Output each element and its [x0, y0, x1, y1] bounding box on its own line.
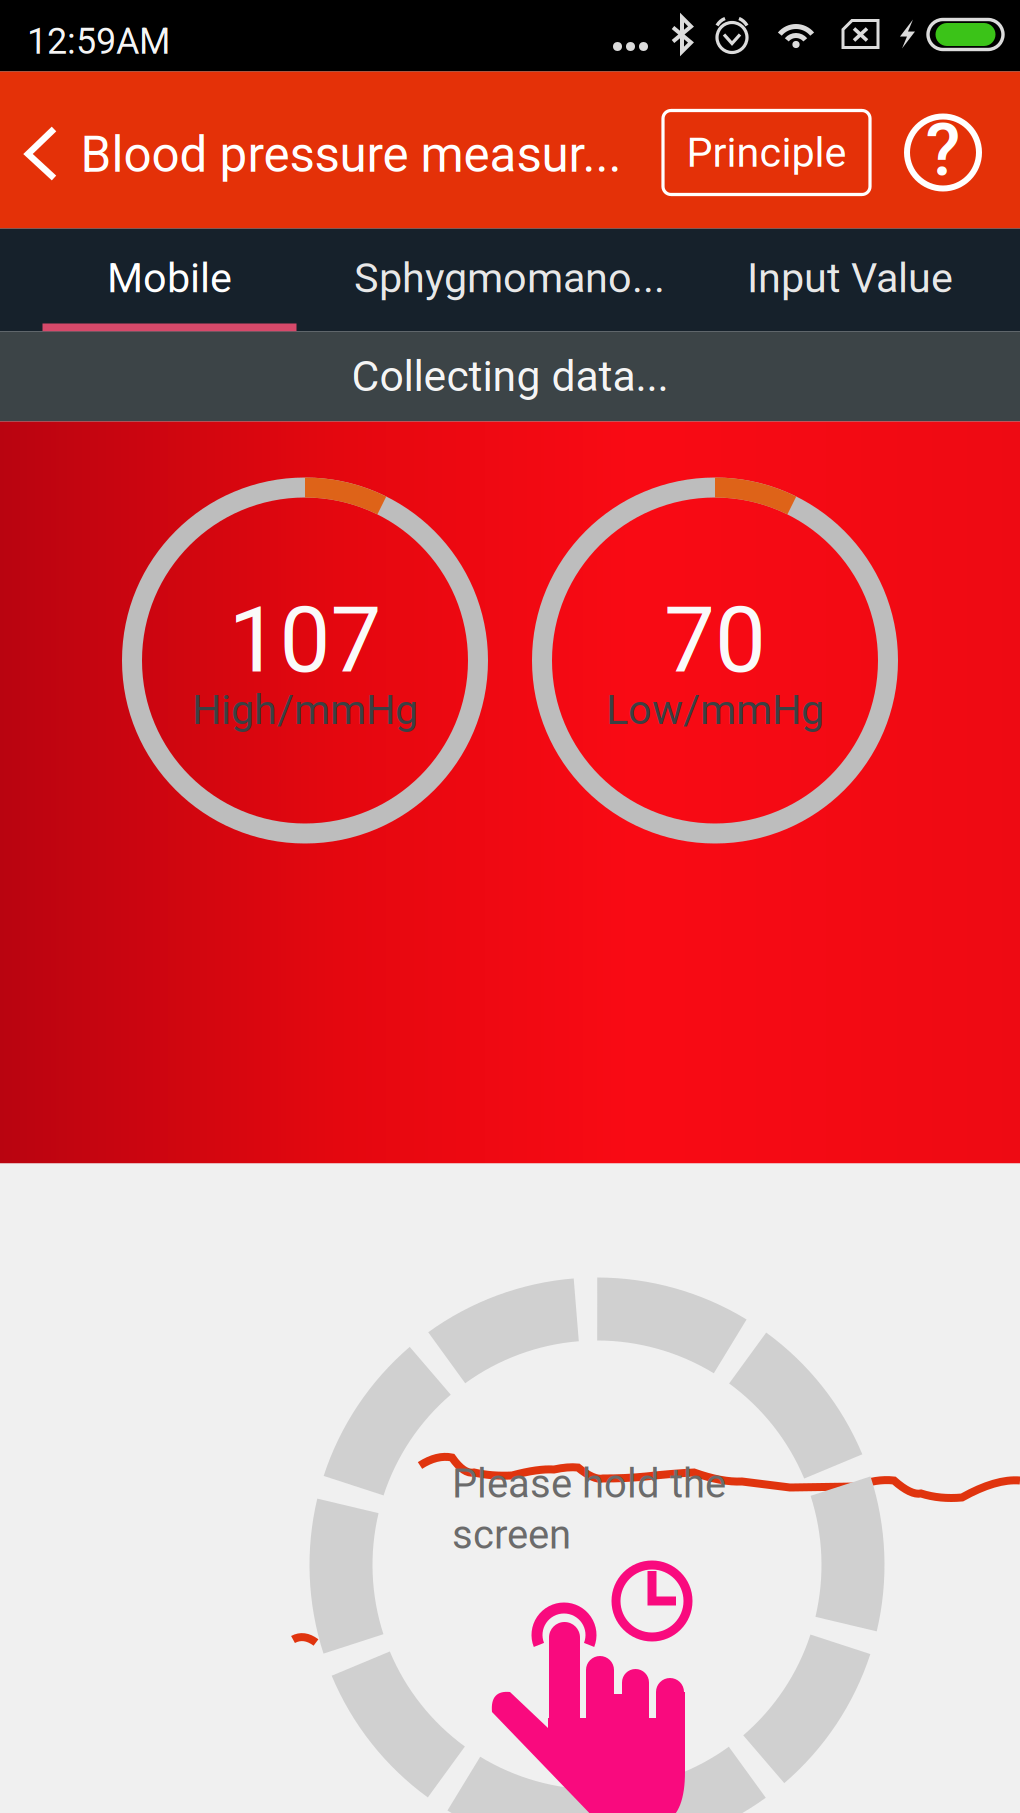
staticText: Low/mmHg: [606, 686, 824, 734]
staticText: Sphygmomano...: [354, 254, 665, 302]
staticText: Principle: [686, 128, 846, 177]
button[interactable]: Sphygmomano...: [339, 228, 680, 331]
staticText: ?: [925, 108, 960, 193]
button[interactable]: Blood pressure measur...: [0, 72, 640, 228]
button[interactable]: Mobile: [0, 228, 339, 331]
staticText: Input Value: [747, 254, 953, 302]
button[interactable]: Principle: [663, 110, 870, 194]
staticText: Blood pressure measur...: [80, 126, 621, 184]
staticText: Mobile: [107, 254, 232, 302]
staticText: screen: [452, 1511, 571, 1558]
staticText: 70: [664, 587, 766, 694]
staticText: Please hold the: [452, 1460, 726, 1507]
staticText: 107: [228, 587, 381, 694]
staticText: Collecting data...: [351, 351, 668, 401]
button[interactable]: Input Value: [680, 228, 1020, 331]
button[interactable]: Help: [904, 113, 982, 191]
staticText: 12:59AM: [27, 20, 170, 63]
staticText: High/mmHg: [192, 686, 418, 734]
